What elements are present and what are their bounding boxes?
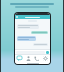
button[interactable]: Settings <box>42 55 49 62</box>
button[interactable]: Send <box>46 51 49 54</box>
button[interactable]: Profile <box>15 15 50 19</box>
button[interactable] <box>33 43 48 46</box>
button[interactable] <box>2 3 62 8</box>
button[interactable] <box>17 36 36 41</box>
button[interactable]: Contacts <box>25 55 32 62</box>
button[interactable]: Calls <box>33 55 40 62</box>
button[interactable] <box>31 31 48 34</box>
button[interactable]: Chats <box>16 55 23 62</box>
button[interactable] <box>17 24 39 29</box>
